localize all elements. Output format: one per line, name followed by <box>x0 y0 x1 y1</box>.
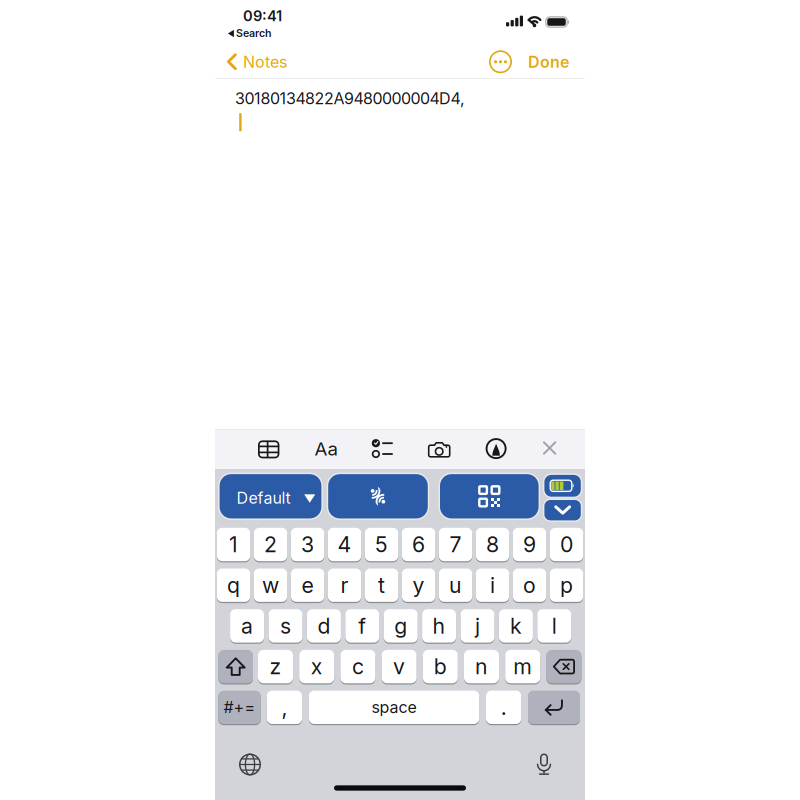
staticText: g <box>394 613 407 638</box>
button[interactable] <box>438 473 540 520</box>
button[interactable]: #+= <box>218 690 261 725</box>
button[interactable] <box>427 440 452 460</box>
staticText: Notes <box>243 53 287 71</box>
staticText: , <box>281 695 287 720</box>
staticText: 6 <box>412 532 425 557</box>
button[interactable]: j <box>460 609 494 643</box>
staticText: r <box>341 573 349 598</box>
button[interactable]: 7 <box>439 527 472 562</box>
button[interactable] <box>485 437 508 460</box>
staticText: e <box>302 573 314 598</box>
button[interactable]: Done <box>522 50 574 74</box>
button[interactable]: l <box>537 609 571 643</box>
staticText: a <box>241 613 253 638</box>
button[interactable] <box>540 438 560 458</box>
button[interactable]: space <box>309 690 479 725</box>
staticText: 5 <box>375 532 388 557</box>
button[interactable]: q <box>217 568 250 602</box>
button[interactable]: g <box>384 609 418 643</box>
staticText: Default <box>237 488 291 507</box>
button[interactable] <box>546 649 581 684</box>
button[interactable] <box>371 439 393 458</box>
button[interactable]: 5 <box>365 527 398 562</box>
button[interactable]: x <box>299 649 334 684</box>
button[interactable]: 1 <box>217 527 250 562</box>
button[interactable]: p <box>550 568 583 602</box>
button[interactable] <box>327 473 429 520</box>
button[interactable] <box>543 473 582 498</box>
button[interactable]: b <box>423 649 458 684</box>
button[interactable]: 0 <box>550 527 583 562</box>
button[interactable]: z <box>258 649 293 684</box>
staticText: Search <box>236 27 272 39</box>
button[interactable]: t <box>365 568 398 602</box>
button[interactable]: h <box>422 609 456 643</box>
staticText: h <box>433 613 446 638</box>
staticText: s <box>280 613 291 638</box>
button[interactable] <box>543 498 582 522</box>
staticText: t <box>378 573 385 598</box>
staticText: Done <box>528 53 569 71</box>
button[interactable]: m <box>505 649 540 684</box>
staticText: o <box>523 573 536 598</box>
button[interactable]: k <box>499 609 533 643</box>
staticText: q <box>227 573 240 598</box>
button[interactable]: v <box>382 649 417 684</box>
button[interactable]: Notes <box>226 50 288 74</box>
staticText: 30180134822A9480000004D4, <box>235 89 465 108</box>
button[interactable]: 4 <box>328 527 361 562</box>
staticText: i <box>490 573 495 598</box>
staticText: 09:41 <box>243 7 282 25</box>
button[interactable]: r <box>328 568 361 602</box>
button[interactable] <box>528 690 580 725</box>
staticText: Aa <box>314 438 337 460</box>
button[interactable]: 6 <box>402 527 435 562</box>
staticText: x <box>311 654 323 679</box>
staticText: n <box>475 654 488 679</box>
button[interactable] <box>488 49 513 74</box>
staticText: w <box>262 573 279 598</box>
staticText: 7 <box>450 532 462 557</box>
staticText: l <box>552 613 557 638</box>
staticText: j <box>475 613 480 638</box>
button[interactable]: 3 <box>291 527 324 562</box>
staticText: 0 <box>560 532 573 557</box>
button[interactable]: Aa <box>311 436 341 462</box>
staticText: p <box>560 573 573 598</box>
staticText: space <box>372 698 417 717</box>
staticText: 8 <box>486 532 499 557</box>
button[interactable]: y <box>402 568 435 602</box>
button[interactable]: Default <box>218 473 323 520</box>
button[interactable]: i <box>476 568 509 602</box>
button[interactable]: s <box>268 609 302 643</box>
staticText: v <box>393 654 405 679</box>
button[interactable]: d <box>307 609 341 643</box>
staticText: y <box>413 573 425 598</box>
button[interactable]: 8 <box>476 527 509 562</box>
staticText: 2 <box>264 532 277 557</box>
button[interactable]: 9 <box>513 527 546 562</box>
button[interactable]: e <box>291 568 324 602</box>
button[interactable] <box>257 437 281 461</box>
button[interactable]: . <box>486 690 521 725</box>
button[interactable] <box>236 750 264 778</box>
button[interactable]: f <box>345 609 379 643</box>
staticText: #+= <box>224 698 256 717</box>
button[interactable]: c <box>340 649 375 684</box>
button[interactable]: o <box>513 568 546 602</box>
button[interactable]: w <box>254 568 287 602</box>
staticText: m <box>513 654 532 679</box>
button[interactable]: n <box>464 649 499 684</box>
staticText: 9 <box>523 532 536 557</box>
button[interactable] <box>218 649 253 684</box>
button[interactable]: , <box>267 690 302 725</box>
button[interactable] <box>530 750 558 778</box>
staticText: k <box>510 613 522 638</box>
staticText: 1 <box>229 532 238 557</box>
button[interactable]: u <box>439 568 472 602</box>
button[interactable]: a <box>230 609 264 643</box>
staticText: b <box>434 654 447 679</box>
staticText: 3 <box>301 532 314 557</box>
button[interactable]: 2 <box>254 527 287 562</box>
staticText: z <box>269 654 281 679</box>
